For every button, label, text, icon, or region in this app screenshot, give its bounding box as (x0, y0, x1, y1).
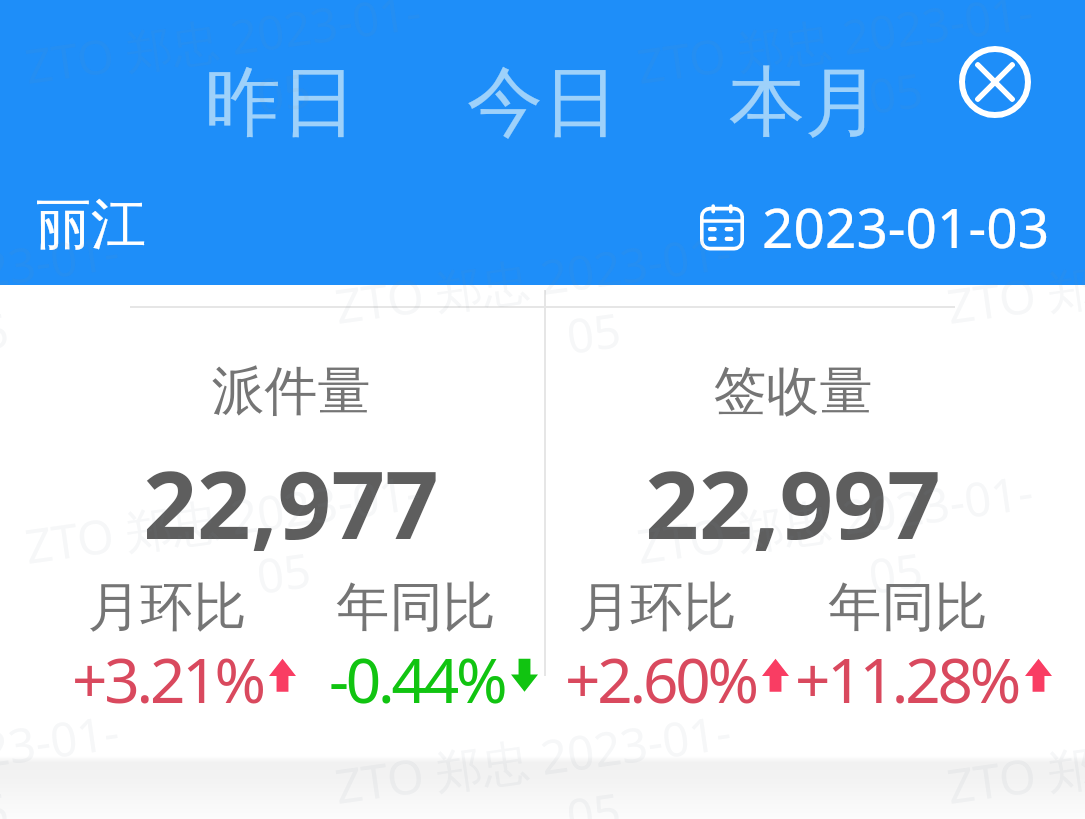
staticText: ZTO 郑忠 2023-01- (21, 459, 425, 578)
staticText: 2023-01-03 (762, 189, 1050, 264)
staticText: ZTO 郑忠 2023-01- (331, 699, 735, 818)
staticText: ZTO 郑忠 2023-01- (21, 0, 425, 98)
staticText: ZTO 郑忠 2023-01- (943, 219, 1085, 338)
staticText: 22,997 (543, 439, 1043, 567)
button[interactable]: 丽江 (36, 190, 146, 259)
button[interactable]: 本月 (729, 55, 881, 151)
button[interactable]: 派件量 (0, 0, 1085, 819)
staticText: 月环比 (507, 574, 807, 641)
staticText: 05 (864, 537, 927, 608)
staticText: ZTO 郑忠 2023-01- (633, 0, 1037, 98)
staticText: 签收量 (593, 358, 993, 425)
staticText: 05 (864, 57, 927, 128)
staticText: 年同比 (266, 574, 566, 641)
staticText: ZTO 郑忠 2023-01- (943, 699, 1085, 818)
staticText: 05 (252, 57, 315, 128)
staticText: 今日 (467, 55, 619, 151)
staticText: -0.44% (329, 637, 505, 721)
button[interactable]: 今日 (467, 55, 619, 151)
button[interactable]: 昨日 (205, 55, 357, 151)
staticText: 丽江 (36, 190, 146, 259)
staticText: +2.60% (565, 637, 756, 721)
staticText: +11.28% (795, 637, 1019, 721)
staticText: 05 (562, 297, 625, 368)
staticText: 派件量 (91, 358, 491, 425)
staticText: 年同比 (758, 574, 1058, 641)
staticText: 05 (252, 537, 315, 608)
button[interactable]: 2023-01-03 (700, 189, 1050, 264)
staticText: +3.21% (72, 637, 263, 721)
staticText: 昨日 (205, 55, 357, 151)
staticText: ZTO 郑忠 2023-01- (0, 699, 123, 818)
staticText: 22,977 (41, 439, 541, 567)
staticText: 本月 (729, 55, 881, 151)
staticText: ZTO 郑忠 2023-01- (0, 219, 123, 338)
staticText: 05 (562, 777, 625, 819)
staticText: ZTO 郑忠 2023-01- (331, 219, 735, 338)
button[interactable]: 签收量 (0, 0, 1085, 819)
staticText: ZTO 郑忠 2023-01- (633, 459, 1037, 578)
staticText: 月环比 (17, 574, 317, 641)
button[interactable]: Close (955, 42, 1035, 122)
